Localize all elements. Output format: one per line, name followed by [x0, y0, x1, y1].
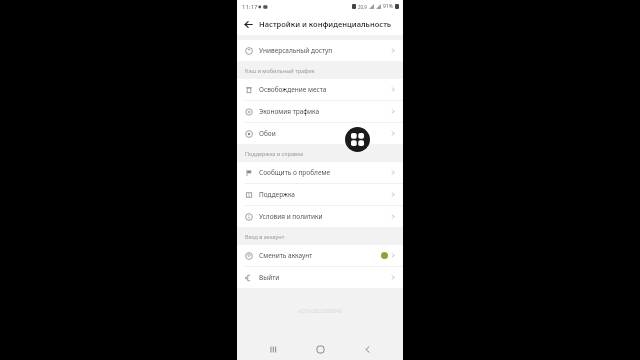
button[interactable]: Экономия трафика [237, 101, 403, 122]
staticText: Освобождение места [259, 85, 391, 94]
staticText: Обои [259, 129, 391, 138]
staticText: 20,9 [358, 4, 367, 10]
button[interactable]: Recents [262, 338, 284, 360]
staticText: Экономия трафика [259, 107, 391, 116]
staticText: Настройки и конфиденциальность [259, 19, 392, 29]
staticText: Вход в аккаунт [245, 233, 285, 240]
button[interactable]: Освобождение места [237, 79, 403, 100]
button[interactable]: Обои [237, 123, 403, 144]
button[interactable]: Back [237, 13, 259, 35]
staticText: v259-62022900040 [237, 308, 403, 315]
staticText: Универсальный доступ [259, 46, 391, 55]
button[interactable]: Сообщить о проблеме [237, 162, 403, 183]
staticText: Сообщить о проблеме [259, 168, 391, 177]
button[interactable]: Back [356, 338, 378, 360]
staticText: Кэш и мобильный трафик [245, 67, 315, 74]
button[interactable]: Условия и политики [237, 206, 403, 227]
staticText: Условия и политики [259, 212, 391, 221]
button[interactable]: App shortcuts [345, 127, 370, 152]
button[interactable]: Сменить аккаунт [237, 245, 403, 266]
button[interactable]: Поддержка [237, 184, 403, 205]
staticText: 11:17 [242, 3, 258, 11]
button[interactable]: Home [309, 338, 331, 360]
staticText: Поддержка и справка [245, 150, 304, 157]
staticText: Выйти [259, 273, 391, 282]
staticText: 91% [383, 3, 393, 10]
button[interactable]: Выйти [237, 267, 403, 288]
staticText: Поддержка [259, 190, 391, 199]
staticText: Сменить аккаунт [259, 251, 381, 260]
button[interactable]: Универсальный доступ [237, 40, 403, 61]
